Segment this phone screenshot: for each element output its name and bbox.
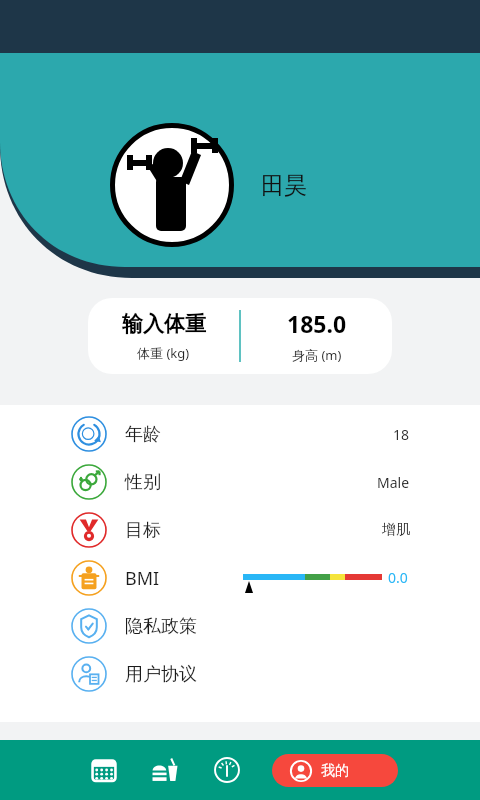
button[interactable]: 目标 xyxy=(0,506,480,554)
staticText: 我的 xyxy=(321,762,349,780)
button[interactable]: 性别 xyxy=(0,458,480,506)
staticText: 输入体重 xyxy=(122,311,206,337)
button[interactable]: 用户协议 xyxy=(0,650,480,698)
staticText: BMI xyxy=(125,566,160,591)
button[interactable]: 我的 xyxy=(272,754,398,787)
button[interactable]: Food xyxy=(141,740,189,800)
staticText: 隐私政策 xyxy=(125,615,197,638)
button[interactable]: Report xyxy=(203,740,251,800)
other: Profile avatar xyxy=(110,123,234,247)
staticText: 0.0 xyxy=(388,568,408,587)
staticText: 18 xyxy=(393,425,410,444)
button[interactable]: 年龄 xyxy=(0,410,480,458)
staticText: 用户协议 xyxy=(125,663,197,686)
button[interactable]: 隐私政策 xyxy=(0,602,480,650)
button[interactable]: Calendar xyxy=(80,740,128,800)
button[interactable]: 输入体重 xyxy=(88,298,392,374)
staticText: 增肌 xyxy=(382,521,410,539)
staticText: Male xyxy=(377,473,410,492)
staticText: 目标 xyxy=(125,519,161,542)
staticText: 田昊 xyxy=(261,171,307,200)
button[interactable]: BMI xyxy=(0,554,480,602)
staticText: 体重 (kg) xyxy=(137,344,190,362)
staticText: 性别 xyxy=(125,471,161,494)
staticText: 身高 (m) xyxy=(292,346,342,364)
staticText: 年龄 xyxy=(125,423,161,446)
staticText: 185.0 xyxy=(287,308,347,339)
